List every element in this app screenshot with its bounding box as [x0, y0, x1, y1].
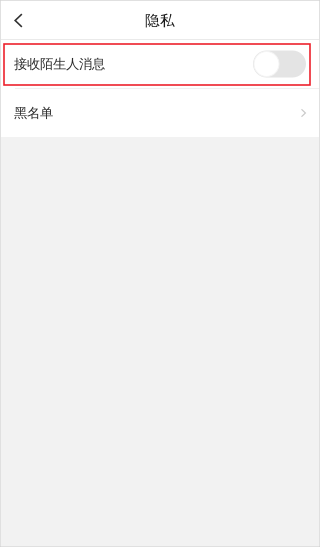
button[interactable]: 黑名单 — [1, 89, 319, 137]
button[interactable]: 接收陌生人消息 — [1, 40, 319, 88]
staticText: 黑名单 — [14, 105, 53, 121]
button[interactable]: Back — [1, 1, 36, 40]
staticText: 接收陌生人消息 — [14, 56, 105, 72]
staticText: 隐私 — [145, 11, 175, 29]
